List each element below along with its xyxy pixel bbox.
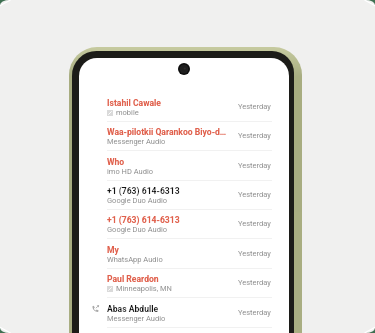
staticText: Who [107,157,125,167]
staticText: Yesterday [238,131,271,140]
staticText: Yesterday [238,190,271,199]
staticText: Abas Abdulle [107,304,159,314]
staticText: imo HD Audio [107,167,153,176]
staticText: WhatsApp Audio [107,255,163,264]
other: Front camera [178,63,190,75]
staticText: Yesterday [238,278,271,287]
staticText: Yesterday [238,219,271,228]
staticText: Waa-pilotkii Qarankoo Biyo-d… [107,127,227,137]
other: Outgoing call [92,305,99,312]
staticText: Minneapolis, MN [116,284,172,293]
button[interactable]: Paul Reardon [79,269,289,298]
button[interactable]: Who [79,152,289,181]
button[interactable]: Istahil Cawale [79,93,289,122]
button[interactable]: Outgoing call [79,299,289,328]
button[interactable]: Waa-pilotkii Qarankoo Biyo-d… [79,122,289,151]
staticText: Paul Reardon [107,274,159,284]
staticText: Yesterday [238,308,271,317]
staticText: Google Duo Audio [107,225,168,234]
staticText: Messenger Audio [107,314,166,323]
button[interactable]: My [79,240,289,269]
staticText: +1 (763) 614-6313 [107,215,180,225]
button[interactable]: +1 (763) 614-6313 [79,181,289,210]
staticText: Google Duo Audio [107,196,168,205]
staticText: My [107,245,119,255]
staticText: Messenger Audio [107,137,166,146]
staticText: Istahil Cawale [107,98,161,108]
staticText: +1 (763) 614-6313 [107,186,180,196]
staticText: Yesterday [238,249,271,258]
staticText: Yesterday [238,102,271,111]
staticText: Yesterday [238,161,271,170]
button[interactable]: +1 (763) 614-6313 [79,210,289,239]
staticText: mobile [116,108,139,117]
